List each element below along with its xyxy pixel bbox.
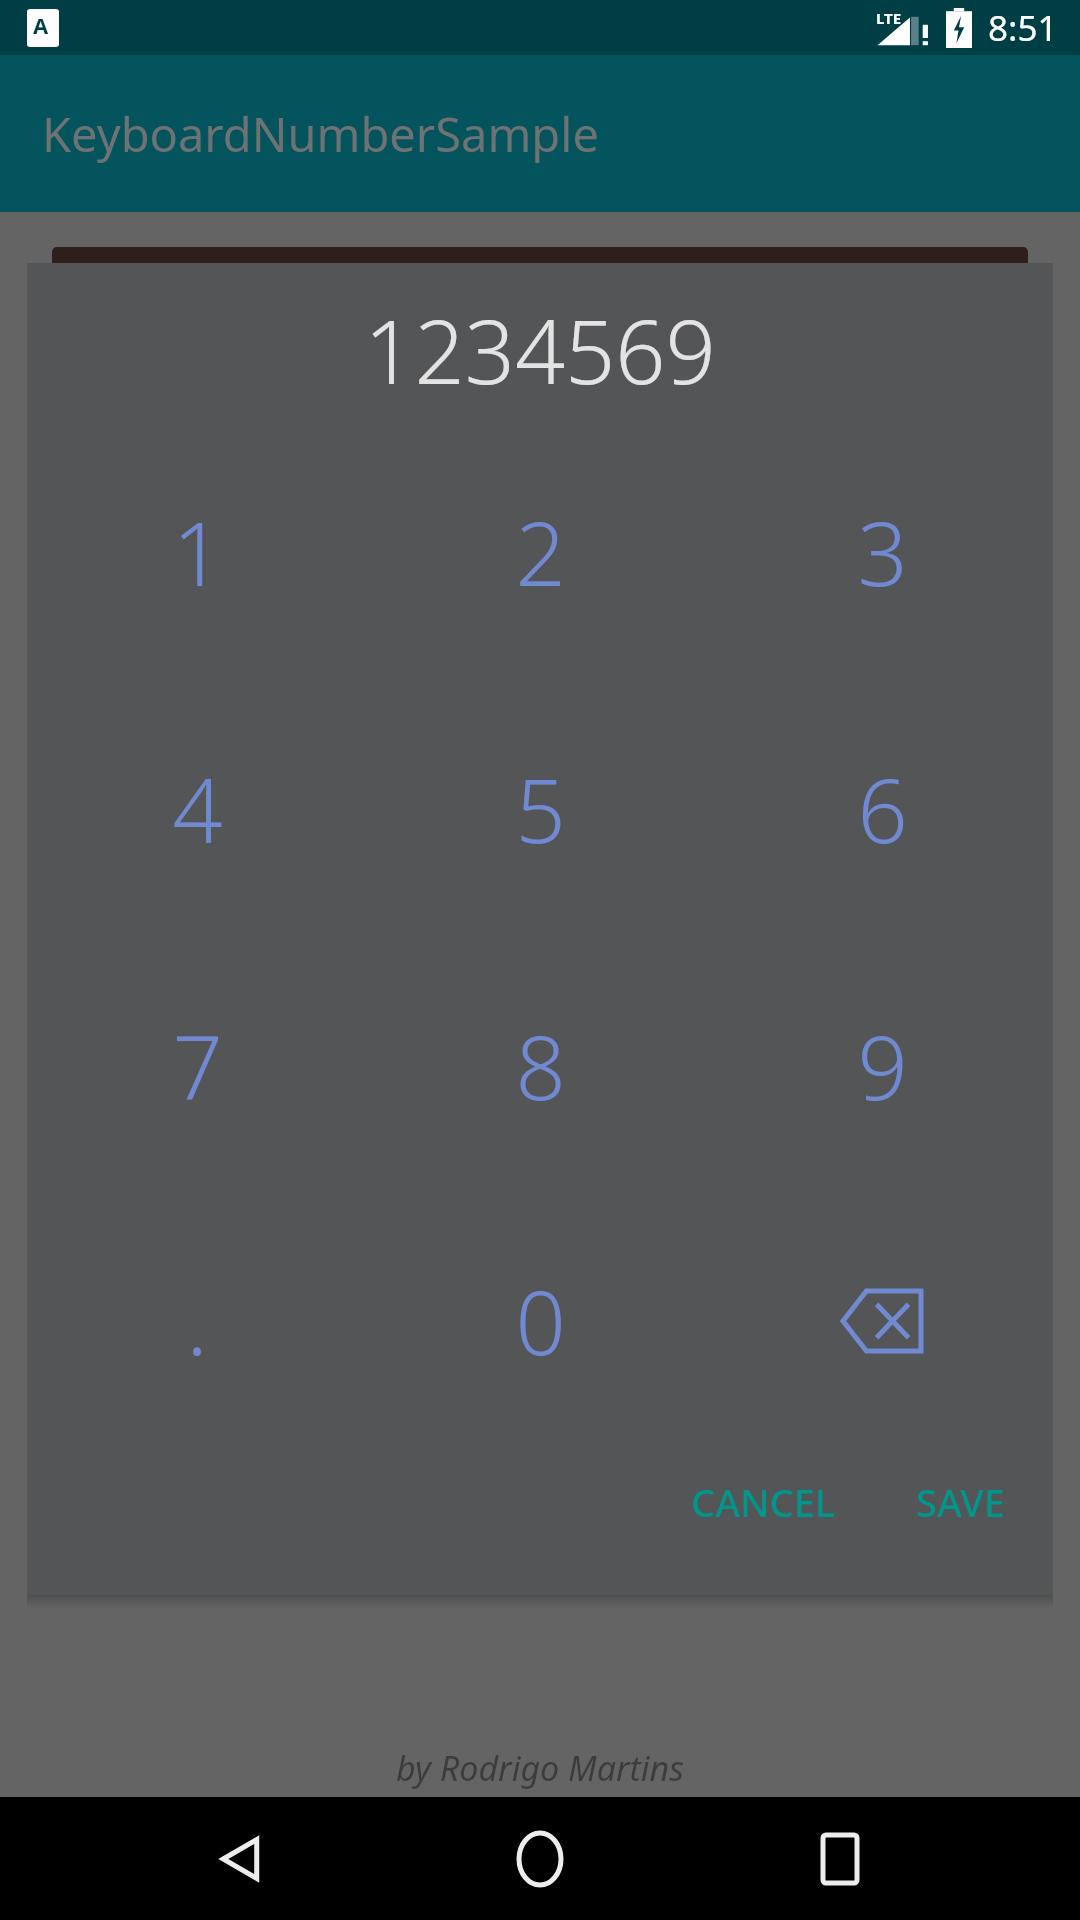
button[interactable]: 8 <box>390 946 690 1186</box>
staticText: 3 <box>857 492 908 612</box>
button[interactable]: Home <box>480 1799 600 1919</box>
button[interactable]: 9 <box>732 946 1032 1186</box>
staticText: KeyboardNumberSample <box>42 102 599 166</box>
button[interactable]: Recent apps <box>780 1799 900 1919</box>
staticText: 6 <box>857 749 908 869</box>
staticText: 9 <box>857 1006 908 1126</box>
button[interactable]: 4 <box>47 689 347 929</box>
button[interactable]: Back <box>180 1799 300 1919</box>
button[interactable]: Backspace <box>732 1201 1032 1441</box>
button[interactable]: CANCEL <box>667 1458 860 1546</box>
staticText: CANCEL <box>691 1476 836 1528</box>
staticText: LTE <box>876 8 902 28</box>
button[interactable]: SAVE <box>892 1458 1029 1546</box>
staticText: 1 <box>172 492 223 612</box>
button[interactable]: 7 <box>47 946 347 1186</box>
staticText: 2 <box>515 492 566 612</box>
button[interactable]: 5 <box>390 689 690 929</box>
button[interactable]: 3 <box>732 432 1032 672</box>
staticText: 5 <box>515 749 566 869</box>
button[interactable]: 2 <box>390 432 690 672</box>
button[interactable]: 1 <box>47 432 347 672</box>
staticText: 4 <box>172 749 223 869</box>
staticText: A <box>33 10 49 40</box>
staticText: 1234569 <box>364 290 716 410</box>
button[interactable]: . <box>47 1201 347 1441</box>
button[interactable]: 0 <box>390 1201 690 1441</box>
staticText: 0 <box>515 1261 566 1381</box>
staticText: 8:51 <box>988 4 1058 52</box>
staticText: . <box>186 1261 208 1381</box>
staticText: 7 <box>172 1006 223 1126</box>
staticText: SAVE <box>916 1476 1005 1528</box>
staticText: by Rodrigo Martins <box>396 1745 684 1791</box>
staticText: 8 <box>515 1006 566 1126</box>
button[interactable]: 6 <box>732 689 1032 929</box>
